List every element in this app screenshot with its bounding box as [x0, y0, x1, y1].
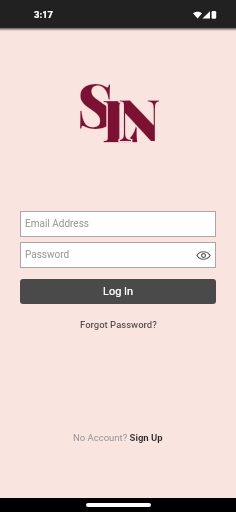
button[interactable]: Password — [20, 242, 216, 268]
staticText: 3:17 — [34, 9, 54, 20]
staticText: Forgot Password? — [80, 319, 157, 330]
button[interactable]: Show password — [196, 248, 211, 263]
staticText: N — [118, 78, 161, 155]
staticText: L — [102, 79, 139, 156]
button[interactable]: Email Address — [20, 211, 216, 237]
button[interactable]: Log In — [20, 279, 216, 304]
button[interactable]: Forgot Password? — [74, 316, 163, 333]
button[interactable]: No Account? Sign Up — [67, 429, 169, 446]
staticText: N — [118, 78, 161, 155]
staticText: No Account? Sign Up — [73, 432, 163, 443]
staticText: Password — [25, 249, 70, 261]
staticText: Log In — [103, 285, 134, 298]
staticText: L — [102, 79, 139, 156]
staticText: Email Address — [25, 218, 89, 230]
staticText: S — [77, 62, 115, 143]
